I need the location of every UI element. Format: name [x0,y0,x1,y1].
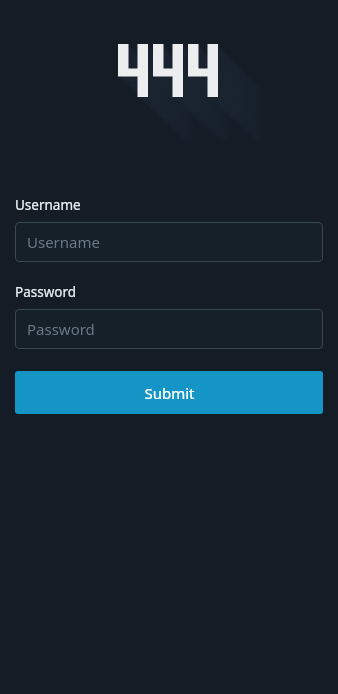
button[interactable]: Username [15,222,323,262]
other: 444 logo [0,0,338,150]
staticText: Username [27,232,100,252]
button[interactable]: Submit [15,371,323,414]
staticText: Username [15,196,81,214]
staticText: Password [27,319,95,339]
staticText: Password [15,283,77,301]
staticText: Submit [144,383,195,403]
button[interactable]: Password [15,309,323,349]
